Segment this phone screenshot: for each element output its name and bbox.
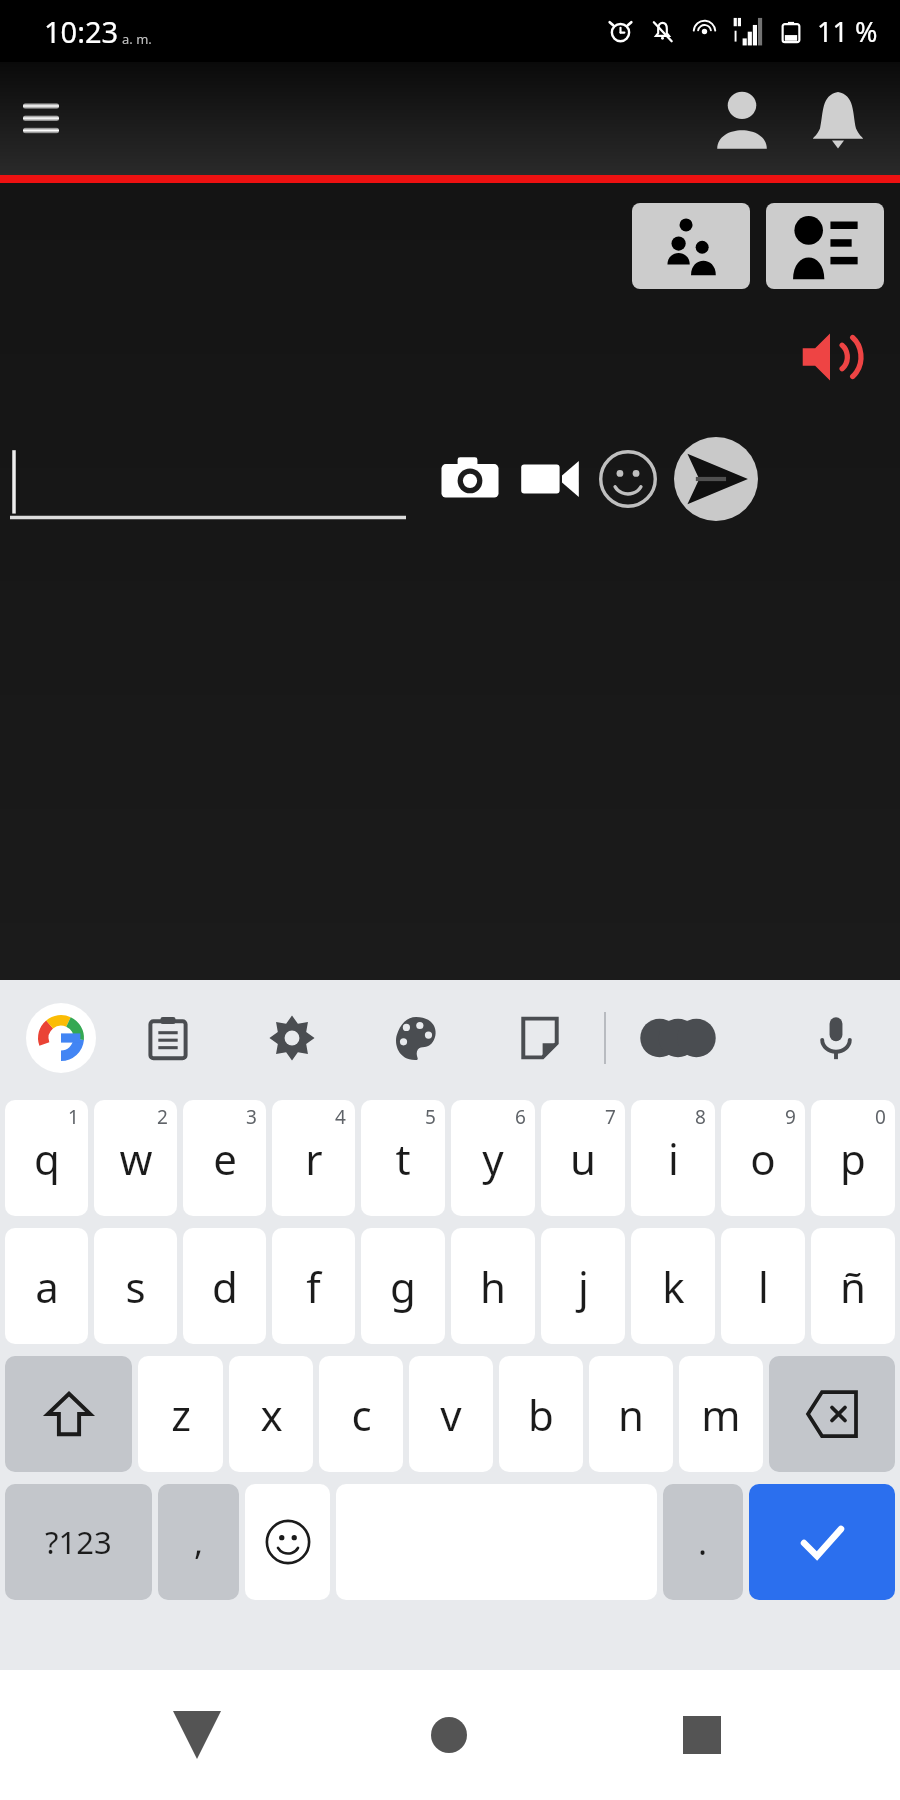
staticText: o	[750, 1130, 776, 1187]
button[interactable]: q	[5, 1100, 88, 1216]
staticText: m	[701, 1386, 741, 1443]
staticText: 5	[425, 1104, 436, 1130]
staticText: 8	[695, 1104, 706, 1130]
button[interactable]: c	[319, 1356, 403, 1472]
button[interactable]: v	[409, 1356, 493, 1472]
staticText: a. m.	[122, 30, 152, 48]
staticText: 0	[875, 1104, 886, 1130]
staticText: 2	[157, 1104, 168, 1130]
button[interactable]: Enter	[749, 1484, 895, 1600]
staticText: e	[213, 1130, 237, 1187]
button[interactable]: Contact details	[766, 203, 884, 289]
staticText: k	[662, 1258, 685, 1315]
button[interactable]: j	[541, 1228, 625, 1344]
button[interactable]: Shift	[5, 1356, 132, 1472]
button[interactable]: z	[138, 1356, 223, 1472]
button[interactable]: .	[663, 1484, 743, 1600]
staticText: d	[212, 1258, 238, 1315]
button[interactable]: m	[679, 1356, 763, 1472]
button[interactable]: Notifications	[790, 71, 886, 167]
staticText: b	[528, 1386, 554, 1443]
staticText: j	[578, 1258, 589, 1315]
staticText: i	[668, 1130, 679, 1187]
staticText: ñ	[840, 1258, 866, 1315]
staticText: v	[440, 1386, 462, 1443]
button[interactable]: h	[451, 1228, 535, 1344]
staticText: ?123	[45, 1521, 112, 1563]
button[interactable]: p	[811, 1100, 895, 1216]
staticText: 6	[515, 1104, 526, 1130]
button[interactable]: Home	[394, 1680, 504, 1790]
button[interactable]: Emoji	[245, 1484, 330, 1600]
button[interactable]: Group chat	[632, 203, 750, 289]
staticText: 7	[605, 1104, 616, 1130]
button[interactable]: Recents	[647, 1680, 757, 1790]
button[interactable]: u	[541, 1100, 625, 1216]
button[interactable]: Settings	[254, 1000, 330, 1076]
button[interactable]: ,	[158, 1484, 239, 1600]
button[interactable]: n	[589, 1356, 673, 1472]
staticText: c	[351, 1386, 372, 1443]
staticText: n	[618, 1386, 644, 1443]
staticText: z	[171, 1386, 191, 1443]
button[interactable]: r	[272, 1100, 355, 1216]
button[interactable]: Send	[668, 431, 764, 527]
staticText: .	[698, 1519, 708, 1565]
button[interactable]: More options	[640, 1000, 716, 1076]
staticText: y	[482, 1130, 504, 1187]
staticText: r	[305, 1130, 323, 1187]
button[interactable]: Back	[142, 1680, 252, 1790]
staticText: 3	[246, 1104, 257, 1130]
button[interactable]: o	[721, 1100, 805, 1216]
button[interactable]: w	[94, 1100, 177, 1216]
staticText: t	[395, 1130, 411, 1187]
staticText: u	[570, 1130, 596, 1187]
button[interactable]: l	[721, 1228, 805, 1344]
button[interactable]: s	[94, 1228, 177, 1344]
button[interactable]: k	[631, 1228, 715, 1344]
staticText: 4	[335, 1104, 346, 1130]
button[interactable]: t	[361, 1100, 445, 1216]
button[interactable]: x	[229, 1356, 313, 1472]
button[interactable]: e	[183, 1100, 266, 1216]
button[interactable]: Google	[22, 999, 100, 1077]
button[interactable]: Video	[512, 441, 588, 517]
staticText: x	[260, 1386, 283, 1443]
button[interactable]: ñ	[811, 1228, 895, 1344]
button[interactable]: Stickers	[502, 1000, 578, 1076]
staticText: a	[35, 1258, 59, 1315]
button[interactable]: y	[451, 1100, 535, 1216]
staticText: ,	[194, 1519, 204, 1565]
staticText: 1	[68, 1104, 79, 1130]
button[interactable]: ?123	[5, 1484, 152, 1600]
staticText: s	[125, 1258, 146, 1315]
button[interactable]: g	[361, 1228, 445, 1344]
staticText: 11 %	[817, 13, 878, 50]
button[interactable]: b	[499, 1356, 583, 1472]
button[interactable]: Profile	[694, 71, 790, 167]
staticText: h	[480, 1258, 506, 1315]
button[interactable]: d	[183, 1228, 266, 1344]
button[interactable]: i	[631, 1100, 715, 1216]
button[interactable]: Voice input	[798, 1000, 874, 1076]
button[interactable]: Themes	[378, 1000, 454, 1076]
button[interactable]: Speaker	[788, 315, 872, 399]
staticText: l	[758, 1258, 769, 1315]
button[interactable]: Camera	[428, 437, 512, 521]
staticText: q	[34, 1130, 60, 1187]
staticText: f	[306, 1258, 321, 1315]
button[interactable]: f	[272, 1228, 355, 1344]
button[interactable]: Menu	[10, 88, 72, 150]
button[interactable]: Clipboard	[130, 1000, 206, 1076]
button[interactable]: Emoji	[588, 439, 668, 519]
staticText: g	[390, 1258, 416, 1315]
button[interactable]	[0, 431, 412, 527]
button[interactable]: a	[5, 1228, 88, 1344]
button[interactable]: Backspace	[769, 1356, 895, 1472]
staticText: 10:23	[44, 12, 119, 51]
staticText: w	[119, 1130, 153, 1187]
staticText: p	[840, 1130, 866, 1187]
staticText: 9	[785, 1104, 796, 1130]
